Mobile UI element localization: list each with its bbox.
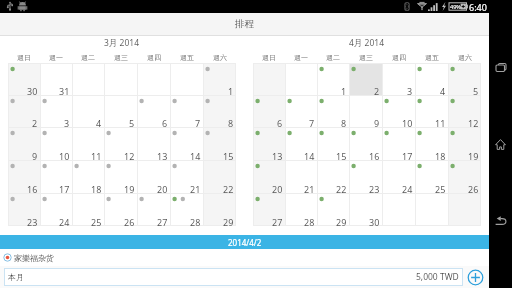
button[interactable]: 4 (415, 63, 448, 95)
button[interactable]: 27 (137, 193, 170, 226)
staticText: 19 (124, 183, 135, 195)
button[interactable]: 17 (40, 160, 72, 193)
button[interactable]: 5 (104, 95, 137, 127)
staticText: 週六 (213, 53, 227, 62)
button[interactable]: 23 (349, 160, 382, 193)
button[interactable]: 排程 (0, 13, 489, 35)
button[interactable] (72, 63, 104, 95)
button[interactable]: 2014/4/2 (0, 235, 489, 249)
button[interactable]: 26 (104, 193, 137, 226)
button[interactable]: 3 (40, 95, 72, 127)
button[interactable]: 9 (8, 127, 40, 160)
staticText: 21 (190, 183, 201, 195)
button[interactable] (415, 193, 448, 226)
button[interactable]: 29 (203, 193, 236, 226)
button[interactable]: 6 (137, 95, 170, 127)
button[interactable]: 16 (8, 160, 40, 193)
button[interactable] (137, 63, 170, 95)
button[interactable]: Home (489, 133, 512, 156)
staticText: 30 (27, 85, 38, 97)
staticText: 週二 (81, 53, 95, 62)
button[interactable] (170, 63, 203, 95)
button[interactable]: 23 (8, 193, 40, 226)
button[interactable]: 17 (382, 127, 415, 160)
staticText: 23 (369, 183, 380, 195)
button[interactable]: 12 (104, 127, 137, 160)
button[interactable]: 22 (203, 160, 236, 193)
button[interactable]: Back (489, 209, 512, 232)
button[interactable]: 10 (40, 127, 72, 160)
button[interactable]: 2 (349, 63, 382, 95)
button[interactable] (382, 193, 415, 226)
button[interactable]: 24 (40, 193, 72, 226)
button[interactable]: 30 (8, 63, 40, 95)
button[interactable]: 15 (203, 127, 236, 160)
button[interactable]: 7 (170, 95, 203, 127)
button[interactable]: 1 (203, 63, 236, 95)
button[interactable]: 11 (72, 127, 104, 160)
button[interactable]: 30 (349, 193, 382, 226)
staticText: 週日 (17, 53, 31, 62)
button[interactable]: 本月 (8, 268, 459, 286)
button[interactable]: 21 (170, 160, 203, 193)
staticText: 週三 (359, 53, 373, 62)
button[interactable]: 16 (349, 127, 382, 160)
staticText: 12 (468, 117, 479, 129)
button[interactable]: 27 (253, 193, 285, 226)
button[interactable]: 18 (415, 127, 448, 160)
button[interactable]: 14 (170, 127, 203, 160)
button[interactable]: 26 (448, 160, 481, 193)
button[interactable]: 家樂福杂货 (3, 249, 489, 266)
button[interactable]: 19 (104, 160, 137, 193)
button[interactable]: 20 (253, 160, 285, 193)
button[interactable]: 14 (285, 127, 317, 160)
staticText: 11 (435, 117, 446, 129)
button[interactable]: 22 (317, 160, 349, 193)
button[interactable]: 13 (137, 127, 170, 160)
button[interactable]: 5 (448, 63, 481, 95)
button[interactable]: 12 (448, 95, 481, 127)
button[interactable]: 1 (317, 63, 349, 95)
button[interactable]: 18 (72, 160, 104, 193)
staticText: 21 (304, 183, 315, 195)
button[interactable]: 6 (253, 95, 285, 127)
button[interactable]: 10 (382, 95, 415, 127)
staticText: 週五 (425, 53, 439, 62)
button[interactable]: Recents (489, 56, 512, 79)
button[interactable] (104, 63, 137, 95)
staticText: 6:40 (469, 1, 487, 13)
button[interactable]: 11 (415, 95, 448, 127)
button[interactable]: 15 (317, 127, 349, 160)
button[interactable]: 8 (317, 95, 349, 127)
staticText: 13 (272, 150, 283, 162)
button[interactable]: 25 (415, 160, 448, 193)
button[interactable]: 3 (382, 63, 415, 95)
staticText: 28 (304, 216, 315, 228)
button[interactable]: 9 (349, 95, 382, 127)
button[interactable]: 21 (285, 160, 317, 193)
button[interactable]: 28 (285, 193, 317, 226)
button[interactable]: 20 (137, 160, 170, 193)
button[interactable]: 25 (72, 193, 104, 226)
button[interactable]: 28 (170, 193, 203, 226)
button[interactable]: 19 (448, 127, 481, 160)
button[interactable]: 24 (382, 160, 415, 193)
button[interactable]: 7 (285, 95, 317, 127)
button[interactable] (285, 63, 317, 95)
button[interactable]: 29 (317, 193, 349, 226)
staticText: 14 (304, 150, 315, 162)
button[interactable]: 2 (8, 95, 40, 127)
button[interactable]: 4 (72, 95, 104, 127)
staticText: 週六 (458, 53, 472, 62)
staticText: 4月 2014 (349, 37, 385, 49)
staticText: 4 (96, 117, 102, 129)
button[interactable]: 31 (40, 63, 72, 95)
staticText: 18 (91, 183, 102, 195)
staticText: 49% (450, 3, 461, 10)
button[interactable]: Add (467, 269, 484, 286)
staticText: 14 (190, 150, 201, 162)
button[interactable]: 13 (253, 127, 285, 160)
button[interactable]: 8 (203, 95, 236, 127)
